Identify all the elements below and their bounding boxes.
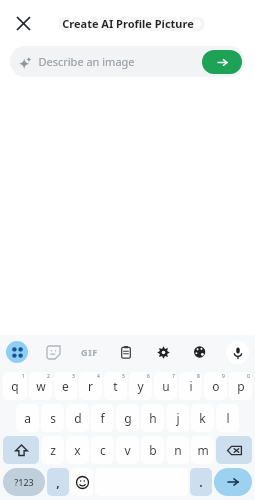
staticText: GIF [81, 346, 98, 358]
staticText: 4 [97, 373, 100, 380]
staticText: z [50, 442, 56, 458]
staticText: q [11, 378, 19, 394]
button[interactable]: a [16, 404, 39, 432]
button[interactable]: c [91, 436, 114, 464]
staticText: 0 [247, 373, 250, 380]
staticText: Create AI Profile Picture [62, 16, 194, 31]
staticText: , [56, 474, 60, 490]
staticText: g [124, 410, 132, 426]
button[interactable]: l [216, 404, 239, 432]
button[interactable]: o [204, 372, 227, 400]
button[interactable]: Settings [152, 341, 174, 363]
button[interactable]: Backspace [216, 436, 252, 464]
button[interactable]: Describe an image [10, 46, 245, 77]
button[interactable]: e [54, 372, 77, 400]
button[interactable]: h [141, 404, 164, 432]
staticText: i [189, 378, 193, 394]
staticText: . [199, 474, 203, 490]
button[interactable]: . [190, 468, 212, 496]
button[interactable]: s [41, 404, 64, 432]
staticText: h [149, 410, 157, 426]
staticText: x [74, 442, 81, 458]
staticText: t [113, 378, 118, 394]
button[interactable]: GIF [78, 341, 100, 363]
staticText: u [162, 378, 170, 394]
staticText: 7 [172, 373, 175, 380]
button[interactable]: Close [8, 8, 38, 38]
staticText: o [212, 378, 220, 394]
staticText: 3 [72, 373, 75, 380]
staticText: b [149, 442, 157, 458]
staticText: 9 [222, 373, 225, 380]
button[interactable]: t [104, 372, 127, 400]
staticText: Describe an image [38, 54, 135, 69]
button[interactable]: j [166, 404, 189, 432]
staticText: 5 [122, 373, 125, 380]
staticText: d [74, 410, 82, 426]
button[interactable]: n [166, 436, 189, 464]
button[interactable]: Clipboard [115, 341, 137, 363]
button[interactable]: f [91, 404, 114, 432]
staticText: 2 [47, 373, 50, 380]
button[interactable]: ?123 [3, 468, 45, 496]
staticText: f [100, 410, 105, 426]
staticText: 6 [147, 373, 150, 380]
button[interactable]: , [47, 468, 69, 496]
button[interactable]: w [29, 372, 52, 400]
button[interactable]: Shift [3, 436, 39, 464]
button[interactable]: r [79, 372, 102, 400]
staticText: p [237, 378, 245, 394]
button[interactable]: u [154, 372, 177, 400]
button[interactable]: q [3, 372, 27, 400]
button[interactable]: v [116, 436, 139, 464]
button[interactable]: Stickers [42, 341, 64, 363]
staticText: ?123 [14, 476, 34, 488]
button[interactable]: i [179, 372, 202, 400]
staticText: a [24, 410, 31, 426]
button[interactable]: Emoji [71, 468, 93, 496]
staticText: w [36, 378, 46, 394]
button[interactable]: p [229, 372, 252, 400]
button[interactable]: g [116, 404, 139, 432]
staticText: m [197, 442, 209, 458]
staticText: s [50, 410, 56, 426]
staticText: 8 [197, 373, 200, 380]
button[interactable]: x [66, 436, 89, 464]
button[interactable]: m [191, 436, 214, 464]
staticText: c [100, 442, 106, 458]
staticText: r [88, 378, 93, 394]
staticText: 1 [22, 373, 25, 380]
button[interactable]: z [41, 436, 64, 464]
button[interactable]: Enter [214, 468, 252, 496]
staticText: j [176, 410, 180, 426]
staticText: e [62, 378, 69, 394]
button[interactable]: Voice input [226, 341, 249, 364]
button[interactable]: y [129, 372, 152, 400]
staticText: l [226, 410, 230, 426]
button[interactable]: k [191, 404, 214, 432]
staticText: k [199, 410, 206, 426]
staticText: y [137, 378, 144, 394]
staticText: v [124, 442, 131, 458]
button[interactable]: Apps [6, 341, 28, 363]
button[interactable]: Generate [202, 50, 242, 74]
button[interactable]: Themes [189, 341, 211, 363]
staticText: CUADSTAINFO [58, 10, 206, 37]
staticText: n [174, 442, 182, 458]
button[interactable]: d [66, 404, 89, 432]
button[interactable]: b [141, 436, 164, 464]
